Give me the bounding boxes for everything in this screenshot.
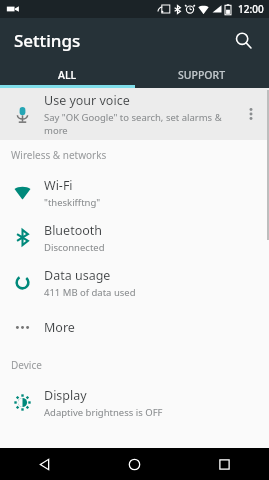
button[interactable]: Search	[225, 22, 261, 58]
button[interactable]: Use your voice	[0, 88, 269, 140]
button[interactable]: Display	[0, 380, 269, 425]
staticText: 411 MB of data used	[44, 286, 136, 299]
staticText: Data usage	[44, 267, 111, 284]
staticText: 12:00	[238, 2, 264, 16]
button[interactable]: Home	[89, 448, 179, 480]
staticText: Say "OK Google" to search, set alarms & …	[44, 111, 236, 137]
button[interactable]: Back	[0, 448, 89, 480]
button[interactable]: More options	[236, 99, 266, 129]
button[interactable]: ALL	[0, 62, 134, 88]
button[interactable]: Wi-Fi	[0, 170, 269, 215]
staticText: ALL	[58, 68, 77, 82]
staticText: Bluetooth	[44, 222, 103, 239]
staticText: Settings	[14, 29, 81, 52]
button[interactable]: More	[0, 305, 269, 350]
staticText: Wi-Fi	[44, 177, 73, 194]
staticText: More	[44, 319, 75, 336]
staticText: Wireless & networks	[11, 148, 107, 162]
button[interactable]: Recent apps	[179, 448, 269, 480]
staticText: Disconnected	[44, 241, 105, 254]
staticText: "theskifftng"	[44, 196, 101, 209]
staticText: Display	[44, 387, 87, 404]
staticText: Device	[11, 358, 42, 372]
button[interactable]: Data usage	[0, 260, 269, 305]
button[interactable]: SUPPORT	[134, 62, 269, 88]
button[interactable]: Bluetooth	[0, 215, 269, 260]
staticText: Adaptive brightness is OFF	[44, 406, 163, 419]
staticText: Use your voice	[44, 92, 130, 109]
staticText: SUPPORT	[178, 68, 226, 82]
